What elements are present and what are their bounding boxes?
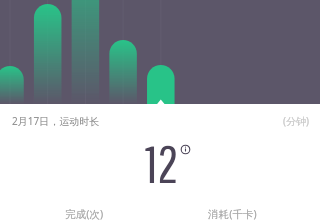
staticText: 2月17日，运动时长 <box>12 114 100 128</box>
staticText: (分钟) <box>283 114 309 128</box>
staticText: 完成(次) <box>65 207 104 220</box>
button[interactable]: 完成(次) <box>65 207 104 220</box>
button[interactable]: 消耗(千卡) <box>208 207 257 220</box>
staticText: 消耗(千卡) <box>208 207 257 220</box>
staticText: 12 <box>145 133 179 193</box>
button[interactable] <box>0 0 320 104</box>
button[interactable]: 说明 <box>179 143 192 156</box>
